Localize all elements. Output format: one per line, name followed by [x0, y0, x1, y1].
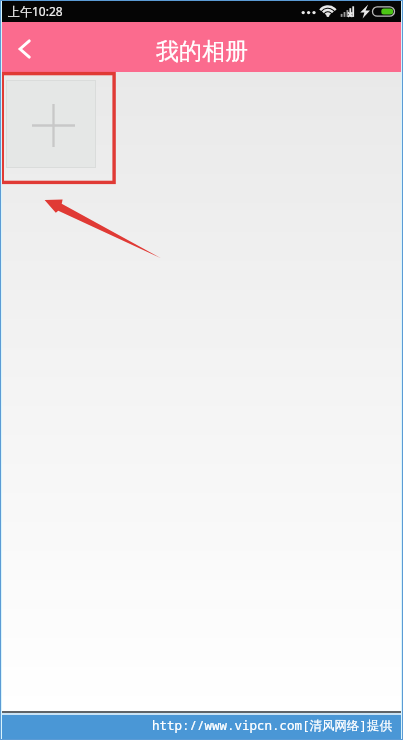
button[interactable]: Add photo	[6, 80, 96, 168]
button[interactable]: Back	[0, 22, 46, 72]
staticText: 我的相册	[156, 37, 248, 66]
staticText: http://www.vipcn.com[清风网络]提供	[152, 717, 393, 734]
staticText: 上午10:28	[8, 3, 63, 19]
